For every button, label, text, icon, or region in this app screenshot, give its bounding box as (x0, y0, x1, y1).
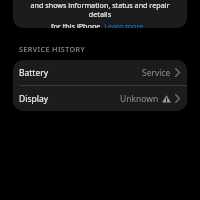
button[interactable]: and shows information, status and repair… (13, 0, 187, 28)
staticText: Service (142, 67, 171, 79)
staticText: Display (19, 93, 48, 105)
staticText: Unknown (120, 93, 159, 105)
staticText: and shows information, status and repair… (21, 0, 179, 19)
staticText: for this iPhone. Learn more… (51, 21, 149, 28)
staticText: Battery (19, 67, 49, 79)
button[interactable]: Battery (13, 60, 187, 86)
staticText: SERVICE HISTORY (19, 44, 86, 54)
button[interactable]: Display (13, 86, 187, 111)
